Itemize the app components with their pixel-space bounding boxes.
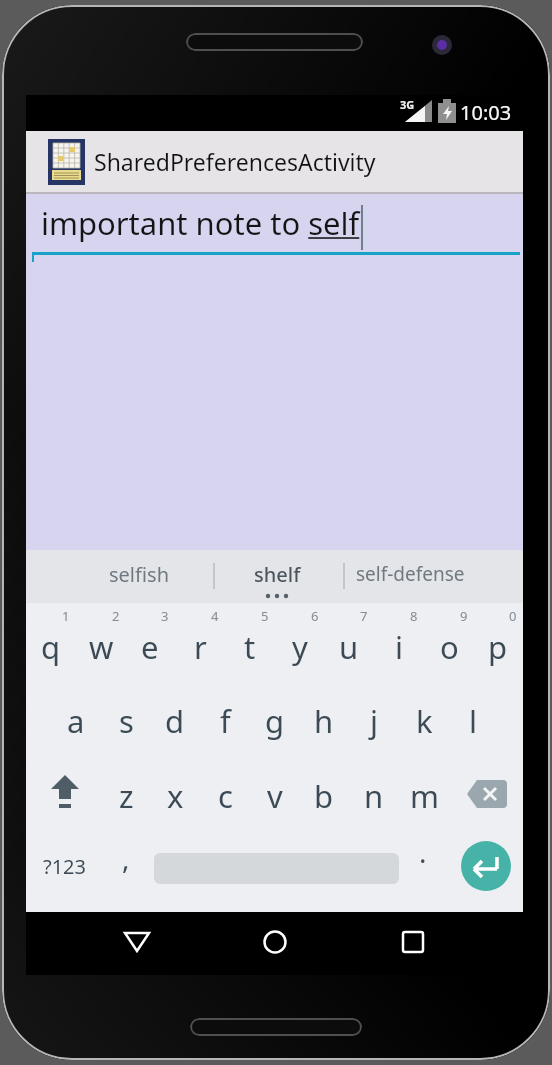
- button[interactable]: q: [26, 616, 76, 678]
- button[interactable]: ?123: [38, 841, 90, 891]
- button[interactable]: [38, 763, 90, 825]
- staticText: 7: [360, 607, 368, 625]
- button[interactable]: SharedPreferencesActivity: [26, 131, 523, 192]
- button[interactable]: r: [175, 616, 225, 678]
- staticText: 10:03: [460, 99, 512, 126]
- staticText: v: [267, 775, 283, 817]
- button[interactable]: u: [324, 616, 374, 678]
- button[interactable]: z: [101, 768, 151, 823]
- staticText: e: [141, 626, 159, 668]
- button[interactable]: [392, 921, 434, 963]
- staticText: i: [395, 626, 403, 668]
- staticText: ,: [122, 839, 130, 877]
- button[interactable]: selfish: [89, 550, 189, 598]
- staticText: 8: [410, 607, 418, 625]
- button[interactable]: [461, 841, 511, 891]
- staticText: h: [314, 700, 334, 742]
- staticText: SharedPreferencesActivity: [94, 146, 376, 177]
- staticText: 1: [62, 607, 70, 625]
- staticText: shelf: [254, 561, 301, 588]
- staticText: b: [314, 775, 334, 817]
- staticText: 0: [509, 607, 517, 625]
- staticText: 6: [311, 607, 319, 625]
- staticText: r: [194, 626, 207, 668]
- button[interactable]: c: [200, 768, 250, 823]
- staticText: 5: [261, 607, 269, 625]
- button[interactable]: w: [76, 616, 126, 678]
- button[interactable]: b: [299, 768, 349, 823]
- staticText: u: [339, 626, 359, 668]
- staticText: q: [41, 626, 61, 668]
- button[interactable]: s: [101, 693, 151, 748]
- staticText: y: [292, 626, 308, 668]
- staticText: l: [469, 700, 477, 742]
- button[interactable]: m: [399, 768, 449, 823]
- staticText: o: [440, 626, 459, 668]
- staticText: f: [220, 700, 231, 742]
- staticText: 4: [211, 607, 219, 625]
- button[interactable]: p: [473, 616, 523, 678]
- button[interactable]: g: [250, 693, 300, 748]
- button[interactable]: y: [275, 616, 325, 678]
- button[interactable]: self-defense: [350, 550, 470, 598]
- staticText: t: [244, 626, 256, 668]
- button[interactable]: n: [349, 768, 399, 823]
- button[interactable]: e: [125, 616, 175, 678]
- button[interactable]: l: [448, 693, 498, 748]
- staticText: m: [410, 775, 439, 817]
- staticText: self-defense: [356, 561, 465, 587]
- button[interactable]: shelf: [227, 550, 327, 598]
- staticText: w: [89, 626, 114, 668]
- button[interactable]: d: [150, 693, 200, 748]
- staticText: k: [416, 700, 433, 742]
- button[interactable]: t: [225, 616, 275, 678]
- staticText: 3G: [400, 97, 415, 112]
- staticText: selfish: [109, 561, 169, 588]
- staticText: z: [119, 775, 134, 817]
- staticText: .: [419, 833, 427, 871]
- staticText: p: [488, 626, 508, 668]
- button[interactable]: k: [399, 693, 449, 748]
- button[interactable]: ,: [101, 833, 151, 883]
- button[interactable]: x: [150, 768, 200, 823]
- button[interactable]: h: [299, 693, 349, 748]
- staticText: ?123: [43, 853, 86, 880]
- staticText: 3: [161, 607, 169, 625]
- button[interactable]: .: [398, 827, 448, 877]
- staticText: 9: [460, 607, 468, 625]
- staticText: a: [67, 700, 85, 742]
- button[interactable]: [116, 921, 158, 963]
- staticText: 2: [112, 607, 120, 625]
- staticText: s: [119, 700, 134, 742]
- button[interactable]: f: [200, 693, 250, 748]
- button[interactable]: [254, 921, 296, 963]
- staticText: g: [265, 700, 285, 742]
- button[interactable]: important note to self: [26, 194, 523, 550]
- staticText: n: [364, 775, 384, 817]
- staticText: j: [370, 700, 378, 742]
- staticText: c: [218, 775, 233, 817]
- button[interactable]: o: [424, 616, 474, 678]
- staticText: important note to self: [41, 202, 360, 244]
- button[interactable]: v: [250, 768, 300, 823]
- button[interactable]: j: [349, 693, 399, 748]
- button[interactable]: [461, 763, 513, 825]
- button[interactable]: a: [51, 693, 101, 748]
- button[interactable]: i: [374, 616, 424, 678]
- staticText: x: [167, 775, 184, 817]
- staticText: d: [165, 700, 185, 742]
